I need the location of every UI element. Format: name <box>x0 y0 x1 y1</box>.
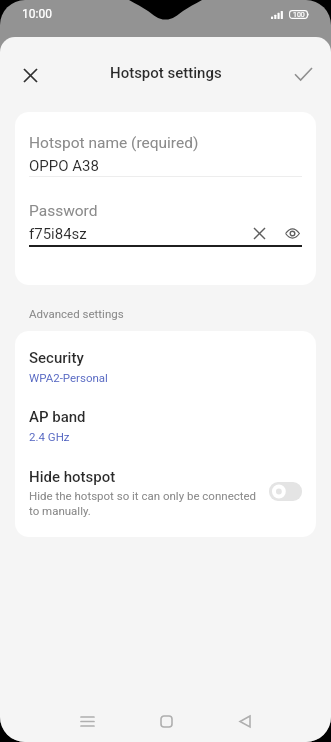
button[interactable]: Confirm <box>283 54 323 94</box>
staticText: Security <box>29 349 84 367</box>
staticText: Password <box>29 202 98 220</box>
staticText: 10:00 <box>22 7 52 21</box>
staticText: Hotspot name (required) <box>29 134 199 152</box>
button[interactable]: Back <box>223 699 267 742</box>
staticText: Hide the hotspot so it can only be conne… <box>29 489 261 518</box>
button[interactable]: Home <box>144 699 188 742</box>
staticText: Hide hotspot <box>29 468 116 486</box>
button[interactable]: Hide hotspot toggle <box>269 482 302 501</box>
button[interactable]: Show password <box>280 221 304 245</box>
button[interactable]: AP band <box>15 402 316 461</box>
button[interactable]: Close <box>10 55 50 95</box>
staticText: Hotspot settings <box>110 64 222 82</box>
staticText: WPA2-Personal <box>29 371 108 384</box>
staticText: AP band <box>29 408 86 426</box>
staticText: Advanced settings <box>29 307 124 320</box>
staticText: f75i84sz <box>29 225 87 243</box>
staticText: OPPO A38 <box>29 157 99 175</box>
button[interactable]: Security <box>15 343 316 402</box>
staticText: 100 <box>293 11 305 19</box>
button[interactable]: Hide hotspot <box>15 461 316 531</box>
button[interactable]: Clear <box>247 221 271 245</box>
staticText: 2.4 GHz <box>29 430 70 443</box>
button[interactable]: Recents <box>65 699 109 742</box>
